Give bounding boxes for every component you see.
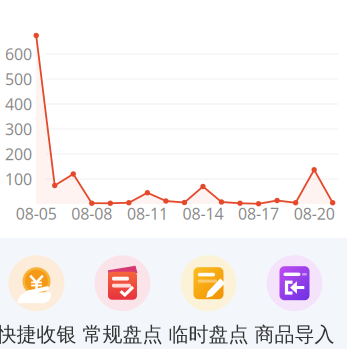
staticText: 08-20 xyxy=(294,203,335,224)
staticText: 100 xyxy=(5,168,32,190)
button[interactable]: 临时盘点 xyxy=(165,251,251,349)
staticText: 08-11 xyxy=(127,203,168,224)
staticText: 200 xyxy=(5,143,32,165)
button[interactable]: 商品导入 xyxy=(251,251,337,349)
staticText: 500 xyxy=(5,68,32,90)
staticText: 商品导入 xyxy=(254,322,334,347)
staticText: 08-17 xyxy=(238,203,279,224)
staticText: 快捷收银 xyxy=(0,322,76,347)
staticText: 400 xyxy=(5,93,32,115)
staticText: 常规盘点 xyxy=(82,322,162,347)
button[interactable]: 常规盘点 xyxy=(79,251,165,349)
staticText: 08-14 xyxy=(182,203,223,224)
button[interactable]: 快捷收银 xyxy=(0,251,79,349)
staticText: 08-05 xyxy=(16,203,57,224)
staticText: 08-08 xyxy=(71,203,112,224)
staticText: 600 xyxy=(5,43,32,65)
staticText: 300 xyxy=(5,118,32,140)
staticText: 临时盘点 xyxy=(168,322,248,347)
